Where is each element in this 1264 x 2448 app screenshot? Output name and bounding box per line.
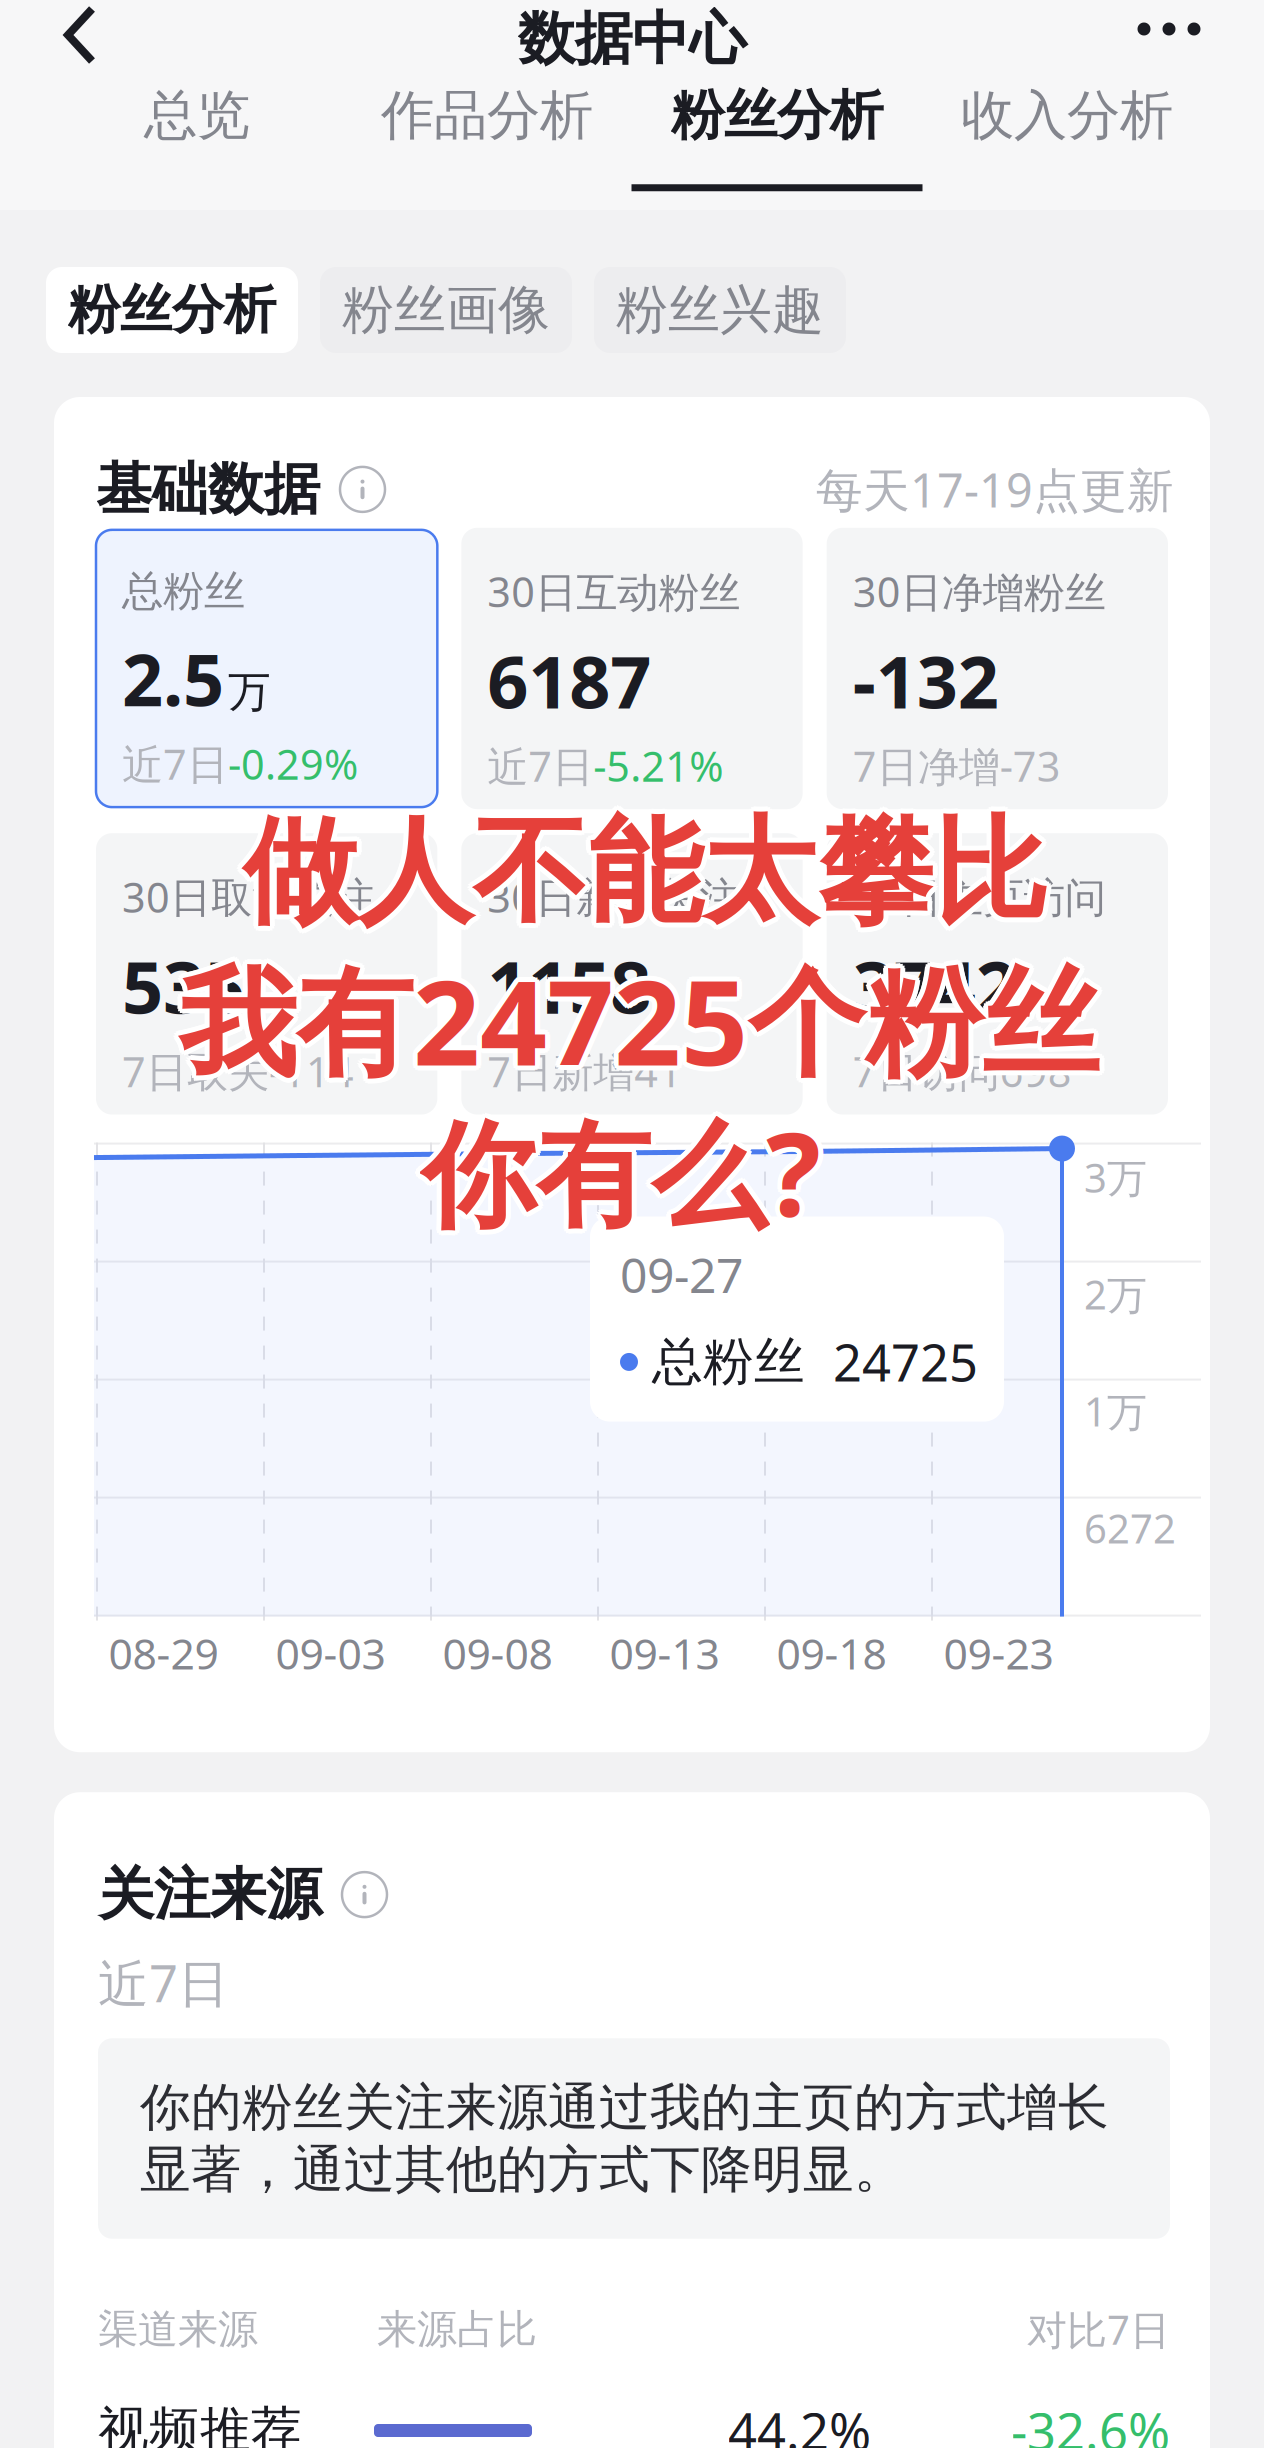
staticText: 近7日	[487, 738, 593, 793]
staticText: 30日净增粉丝	[853, 564, 1106, 619]
staticText: 7日新增	[487, 1044, 634, 1099]
staticText: -132	[853, 633, 999, 728]
staticText: 535	[122, 938, 245, 1034]
staticText: 6187	[487, 633, 651, 728]
staticText: 2万	[1084, 1267, 1147, 1321]
staticText: 6272	[1084, 1501, 1176, 1554]
staticText: 做人不能太攀比	[247, 804, 1052, 945]
staticText: 24725	[833, 1328, 978, 1396]
staticText: 我有24725个粉丝	[176, 938, 1096, 1093]
staticText: 我有24725个粉丝	[184, 942, 1104, 1098]
staticText: 做人不能太攀比	[243, 807, 1048, 948]
staticText: 我有24725个粉丝	[181, 946, 1101, 1102]
staticText: 做人不能太攀比	[240, 798, 1045, 938]
staticText: 做人不能太攀比	[243, 797, 1048, 938]
button[interactable]: 30日互动粉丝	[461, 528, 803, 809]
staticText: 你有么?	[425, 1093, 825, 1246]
staticText: 30日取消关注	[122, 869, 375, 924]
staticText: 08-29	[108, 1625, 218, 1681]
button[interactable]: 总粉丝	[96, 530, 437, 807]
staticText: 你有么?	[416, 1096, 816, 1248]
staticText: -32.6%	[1011, 2397, 1170, 2448]
staticText: 1158	[487, 938, 651, 1034]
staticText: 我有24725个粉丝	[183, 944, 1103, 1100]
staticText: 09-27	[620, 1243, 743, 1306]
staticText: 视频推荐	[98, 2399, 302, 2448]
staticText: 数据中心	[518, 4, 746, 74]
staticText: 1万	[1084, 1384, 1147, 1438]
button[interactable]: 30日净增粉丝	[827, 528, 1168, 809]
staticText: 做人不能太攀比	[243, 802, 1048, 943]
staticText: 粉丝分析	[68, 278, 276, 342]
staticText: -73	[1000, 738, 1061, 793]
staticText: 做人不能太攀比	[239, 799, 1044, 940]
staticText: 09-08	[442, 1625, 552, 1681]
staticText: 我有24725个粉丝	[175, 944, 1095, 1100]
button[interactable]: 粉丝画像	[320, 267, 572, 353]
staticText: -5.21%	[593, 738, 723, 793]
staticText: 近7日	[98, 1949, 229, 2016]
staticText: 7日取关	[122, 1044, 269, 1099]
staticText: 做人不能太攀比	[247, 799, 1052, 940]
staticText: 你有么?	[423, 1100, 823, 1253]
staticText: 你有么?	[421, 1096, 821, 1248]
staticText: 每天17-19点更新	[816, 458, 1174, 520]
button[interactable]: 总览	[52, 78, 342, 210]
staticText: 做人不能太攀比	[238, 802, 1043, 943]
button[interactable]: Back	[0, 0, 160, 78]
button[interactable]: More options	[1074, 0, 1264, 78]
staticText: 近7日	[122, 736, 228, 791]
button[interactable]: 粉丝分析	[632, 78, 922, 210]
staticText: 粉丝兴趣	[616, 278, 824, 342]
staticText: 09-23	[943, 1625, 1053, 1681]
staticText: 我有24725个粉丝	[175, 939, 1095, 1095]
staticText: 7日访问	[853, 1044, 1000, 1099]
staticText: 万	[228, 666, 271, 718]
staticText: 渠道来源	[98, 2305, 258, 2354]
staticText: 我有24725个粉丝	[183, 939, 1103, 1095]
staticText: 09-18	[776, 1625, 886, 1681]
button[interactable]: 作品分析	[342, 78, 632, 210]
staticText: 你的粉丝关注来源通过我的主页的方式增长显著，通过其他的方式下降明显。	[140, 2076, 1109, 2201]
staticText: 基础数据	[96, 455, 320, 524]
staticText: 来源占比	[377, 2305, 537, 2354]
staticText: 作品分析	[381, 83, 593, 148]
staticText: 41	[634, 1044, 682, 1099]
staticText: 30日互动粉丝	[487, 564, 740, 619]
button[interactable]: 30日取消关注	[96, 833, 437, 1115]
button[interactable]: 粉丝兴趣	[594, 267, 846, 353]
staticText: 我有24725个粉丝	[179, 942, 1099, 1098]
staticText: 你有么?	[417, 1098, 817, 1251]
staticText: 做人不能太攀比	[248, 802, 1053, 943]
staticText: 收入分析	[961, 83, 1173, 148]
staticText: 3万	[1084, 1151, 1147, 1204]
staticText: 09-03	[275, 1625, 385, 1681]
staticText: 总粉丝	[122, 566, 245, 617]
staticText: 我有24725个粉丝	[181, 938, 1101, 1093]
staticText: 你有么?	[425, 1098, 825, 1251]
staticText: 做人不能太攀比	[239, 804, 1044, 945]
staticText: 总览	[144, 83, 250, 148]
staticText: 总粉丝	[652, 1331, 805, 1393]
staticText: 你有么?	[421, 1091, 821, 1243]
staticText: 对比7日	[1027, 2303, 1170, 2356]
staticText: 关注来源	[98, 1860, 322, 1929]
button[interactable]: 30日新增关注	[461, 833, 803, 1115]
staticText: 3742	[853, 938, 1017, 1034]
staticText: 做人不能太攀比	[245, 798, 1050, 938]
staticText: 你有么?	[418, 1100, 818, 1253]
staticText: 30日新增关注	[487, 869, 740, 924]
button[interactable]: 粉丝分析	[46, 267, 298, 353]
staticText: 我有24725个粉丝	[179, 937, 1099, 1093]
staticText: 做人不能太攀比	[245, 806, 1050, 947]
button[interactable]: 30日主页访问	[827, 833, 1168, 1115]
staticText: 我有24725个粉丝	[179, 947, 1099, 1103]
staticText: -114	[269, 1044, 354, 1099]
staticText: 做人不能太攀比	[240, 806, 1045, 947]
staticText: 44.2%	[728, 2397, 871, 2448]
staticText: 我有24725个粉丝	[174, 942, 1094, 1098]
staticText: 你有么?	[423, 1092, 823, 1244]
button[interactable]: 收入分析	[922, 78, 1212, 210]
staticText: 你有么?	[426, 1096, 826, 1248]
staticText: 粉丝画像	[342, 278, 550, 342]
